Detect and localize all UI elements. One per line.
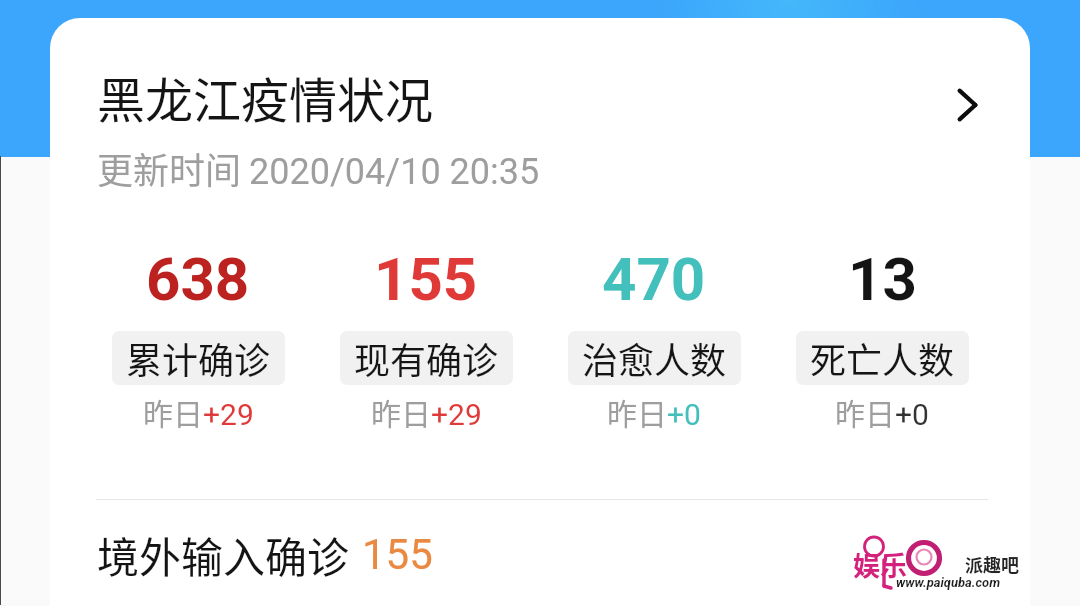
- staticText: 死亡人数: [810, 332, 955, 384]
- staticText: www.paiquba.com: [896, 575, 1001, 590]
- staticText: 累计确诊: [126, 332, 271, 384]
- staticText: 昨日+29: [143, 390, 254, 433]
- staticText: 境外输入确诊: [97, 524, 350, 585]
- staticText: 昨日+29: [371, 390, 482, 433]
- button[interactable]: 155: [312, 244, 540, 433]
- staticText: 155: [374, 244, 478, 314]
- button[interactable]: 470: [540, 244, 768, 433]
- staticText: 更新时间 2020/04/10 20:35: [97, 142, 540, 194]
- staticText: 昨日+0: [835, 390, 929, 433]
- staticText: 派趣吧: [965, 551, 1019, 577]
- staticText: 娱乐: [853, 545, 907, 584]
- staticText: 黑龙江疫情状况: [97, 62, 434, 132]
- staticText: 13: [848, 244, 917, 314]
- staticText: 470: [602, 244, 706, 314]
- staticText: 治愈人数: [582, 332, 727, 384]
- button[interactable]: 境外输入确诊: [50, 524, 1030, 585]
- staticText: 昨日+0: [607, 390, 701, 433]
- button[interactable]: 638: [84, 244, 312, 433]
- button[interactable]: View province details: [939, 77, 995, 133]
- staticText: 638: [146, 244, 250, 314]
- staticText: 155: [362, 530, 433, 579]
- button[interactable]: 黑龙江疫情状况: [50, 62, 1030, 194]
- button[interactable]: 13: [768, 244, 996, 433]
- staticText: 现有确诊: [354, 332, 499, 384]
